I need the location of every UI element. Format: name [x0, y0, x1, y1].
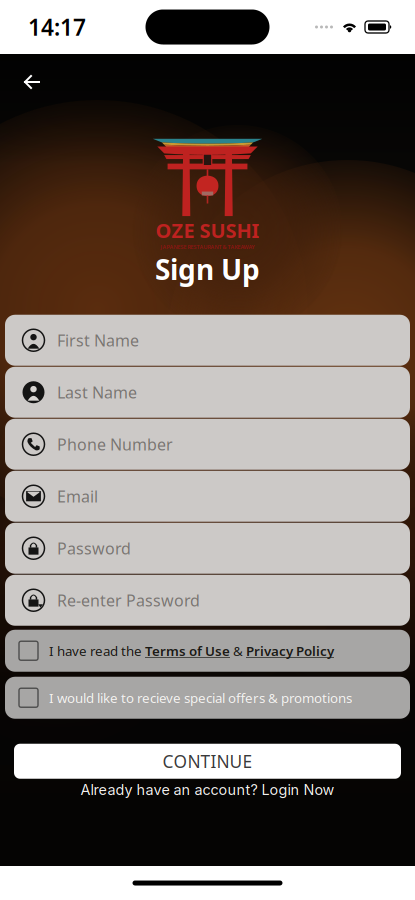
staticText: CONTINUE: [162, 750, 252, 773]
staticText: Phone Number: [57, 434, 173, 455]
button[interactable]: Re-enter Password: [5, 575, 410, 626]
button[interactable]: I would like to recieve special offers &…: [5, 677, 410, 719]
staticText: Email: [57, 486, 98, 507]
button[interactable]: Password: [5, 523, 410, 574]
staticText: OZE SUSHI: [155, 217, 259, 243]
button[interactable]: CONTINUE: [14, 744, 401, 779]
staticText: Sign Up: [155, 251, 260, 288]
staticText: I would like to recieve special offers &…: [49, 689, 352, 707]
staticText: Password: [57, 538, 131, 559]
button[interactable]: Already have an account? Login Now: [0, 779, 415, 801]
button[interactable]: Phone Number: [5, 419, 410, 470]
staticText: 14:17: [28, 12, 86, 42]
button[interactable]: Back: [8, 60, 56, 104]
staticText: JAPANESE RESTAURANT & TAKEAWAY: [160, 243, 254, 251]
staticText: Already have an account? Login Now: [80, 781, 334, 798]
staticText: Last Name: [57, 382, 137, 403]
button[interactable]: First Name: [5, 315, 410, 366]
staticText: Re-enter Password: [57, 590, 200, 611]
staticText: First Name: [57, 330, 139, 351]
button[interactable]: I have read the Terms of Use & Privacy P…: [5, 630, 410, 672]
button[interactable]: Last Name: [5, 367, 410, 418]
staticText: I have read the Terms of Use & Privacy P…: [49, 642, 334, 660]
button[interactable]: Email: [5, 471, 410, 522]
